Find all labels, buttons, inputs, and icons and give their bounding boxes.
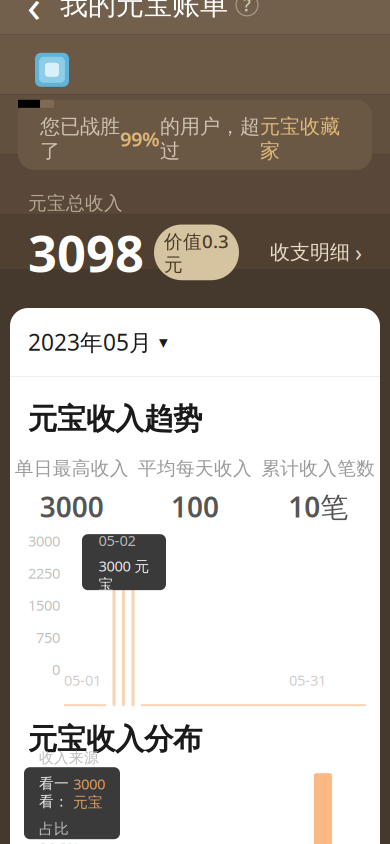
staticText: 2023年05月 — [28, 327, 152, 357]
staticText: 2250 — [28, 563, 60, 583]
staticText: ‹ — [27, 0, 41, 35]
staticText: 看一看： — [39, 775, 69, 811]
staticText: 0 — [52, 660, 60, 679]
staticText: 1500 — [28, 819, 60, 839]
staticText: 05-01 — [64, 670, 101, 690]
button[interactable]: 收支明细 — [270, 231, 362, 273]
staticText: 1500 — [28, 595, 60, 615]
staticText: 的用户，超过 — [160, 114, 260, 163]
staticText: 05-31 — [289, 670, 326, 690]
staticText: 3000 — [28, 764, 60, 784]
staticText: 我的元宝账单 — [60, 0, 228, 22]
button[interactable]: Help — [228, 0, 258, 16]
staticText: 平均每天收入 — [138, 457, 252, 480]
staticText: 元宝收入分布 — [28, 721, 202, 757]
staticText: 10笔 — [288, 488, 348, 525]
staticText: 3098 — [28, 219, 144, 286]
staticText: 单日最高收入 — [15, 457, 129, 480]
staticText: ? — [243, 0, 251, 16]
staticText: 3000 元宝 — [98, 556, 149, 594]
staticText: 价值0.3元 — [164, 228, 229, 276]
staticText: 您已战胜了 — [40, 114, 120, 163]
staticText: 100 — [171, 488, 219, 525]
staticText: 元宝收入趋势 — [28, 401, 202, 437]
staticText: 750 — [36, 628, 60, 647]
staticText: 累计收入笔数 — [261, 457, 375, 480]
staticText: 2250 — [28, 792, 60, 811]
staticText: 99% — [120, 125, 160, 152]
staticText: 3000 — [40, 488, 104, 525]
button[interactable]: 2023年05月 — [28, 319, 168, 365]
staticText: 3000元宝 — [73, 774, 105, 811]
staticText: ▾ — [159, 332, 168, 352]
staticText: › — [355, 237, 362, 267]
staticText: 3000 — [28, 531, 60, 551]
staticText: 元宝总收入 — [28, 192, 123, 215]
staticText: 05-02 — [98, 531, 135, 550]
staticText: 元宝收藏家 — [260, 114, 340, 163]
staticText: 收入来源 — [39, 749, 99, 767]
button[interactable]: Back — [12, 0, 56, 27]
staticText: 占比 96.8% — [39, 818, 79, 844]
staticText: 收支明细 — [270, 240, 350, 265]
